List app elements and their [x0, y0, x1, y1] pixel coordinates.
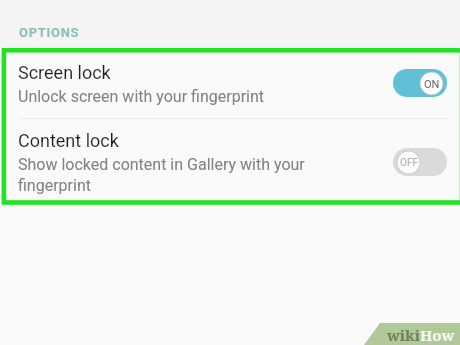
staticText: ON	[424, 78, 440, 91]
staticText: OFF	[400, 157, 418, 169]
staticText: Content lock	[18, 130, 119, 151]
staticText: OPTIONS	[19, 25, 80, 40]
staticText: Unlock screen with your fingerprint	[18, 87, 265, 106]
button[interactable]: Content lock	[0, 119, 460, 205]
staticText: How	[420, 325, 455, 345]
staticText: Show locked content in Gallery with your…	[18, 155, 308, 195]
staticText: wiki	[387, 325, 420, 345]
button[interactable]: Content lock, off	[393, 148, 447, 176]
staticText: Screen lock	[18, 62, 111, 83]
button[interactable]: Screen lock	[0, 48, 460, 118]
button[interactable]: Screen lock, on	[393, 69, 447, 97]
